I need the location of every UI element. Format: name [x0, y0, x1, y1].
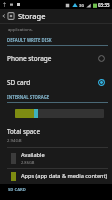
staticText: Total space [7, 127, 40, 136]
staticText: 2.86GB [21, 160, 35, 165]
button[interactable]: Phone storage [0, 46, 112, 70]
staticText: 3G [79, 3, 85, 8]
staticText: Apps (app data & media content) [21, 172, 108, 180]
staticText: Available [21, 151, 45, 159]
staticText: applications. [8, 27, 33, 33]
staticText: Phone storage [7, 54, 98, 63]
button[interactable]: Total space [0, 125, 112, 147]
staticText: 03:35 [98, 2, 110, 8]
staticText: 2.94GB [7, 137, 22, 143]
staticText: INTERNAL STORAGE [7, 94, 50, 100]
staticText: SD CARD [8, 187, 26, 193]
button[interactable]: Available [0, 148, 112, 168]
button[interactable]: Apps (app data & media content) [0, 169, 112, 184]
button[interactable]: Back [0, 9, 16, 23]
staticText: SD card [7, 78, 98, 87]
button[interactable]: SD card [0, 70, 112, 94]
staticText: Storage [18, 11, 46, 21]
staticText: DEFAULT WRITE DISK [7, 37, 52, 43]
